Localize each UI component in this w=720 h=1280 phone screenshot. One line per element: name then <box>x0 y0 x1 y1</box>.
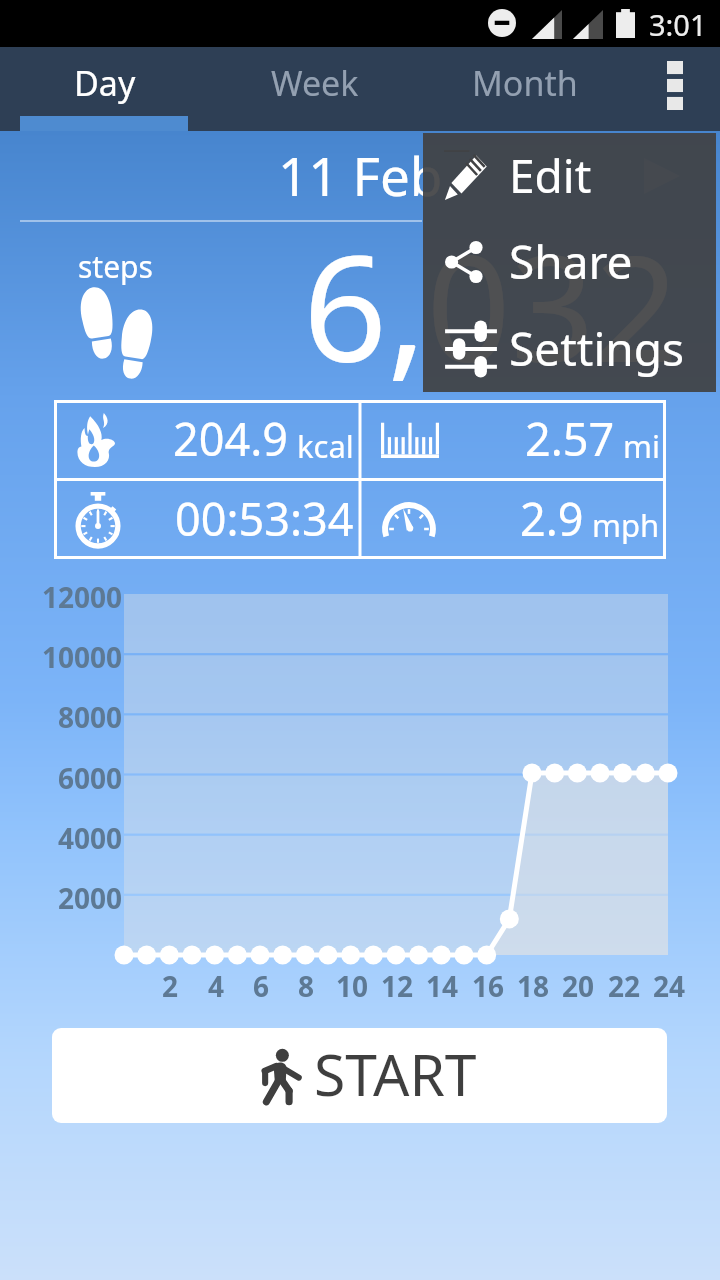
staticText: 8000 <box>2 698 122 736</box>
button[interactable]: Day <box>0 47 210 131</box>
staticText: 6 <box>231 967 291 1005</box>
staticText: Week <box>271 60 359 106</box>
other: Do not disturb <box>488 9 516 37</box>
staticText: 10 <box>322 967 382 1005</box>
button[interactable]: 2.57 <box>360 400 666 479</box>
staticText: 14 <box>412 967 472 1005</box>
button[interactable]: START <box>52 1028 667 1123</box>
staticText: 8 <box>276 967 336 1005</box>
staticText: 2.9 <box>520 488 584 549</box>
staticText: 18 <box>503 967 563 1005</box>
staticText: Edit <box>509 144 592 207</box>
staticText: mi <box>623 425 660 467</box>
staticText: steps <box>78 246 153 287</box>
staticText: 6,032 <box>303 205 679 405</box>
staticText: 4000 <box>2 819 122 857</box>
staticText: 10000 <box>2 638 122 676</box>
button[interactable]: More options <box>630 47 720 131</box>
staticText: 12000 <box>2 578 122 616</box>
staticText: 6000 <box>2 759 122 797</box>
button[interactable]: Month <box>420 47 630 131</box>
button[interactable]: 204.9 <box>54 400 360 479</box>
staticText: 16 <box>458 967 518 1005</box>
staticText: 22 <box>594 967 654 1005</box>
staticText: 2 <box>140 967 200 1005</box>
staticText: 204.9 <box>173 408 289 469</box>
button[interactable]: Edit <box>423 133 716 219</box>
staticText: 4 <box>186 967 246 1005</box>
staticText: Day <box>74 60 136 106</box>
staticText: Share <box>509 230 633 293</box>
staticText: Settings <box>509 317 685 380</box>
staticText: START <box>314 1035 477 1113</box>
staticText: Month <box>472 60 578 106</box>
staticText: 24 <box>639 967 699 1005</box>
staticText: kcal <box>297 425 354 467</box>
button[interactable]: Settings <box>423 306 716 392</box>
staticText: 3:01 <box>649 5 707 44</box>
staticText: 00:53:34 <box>175 488 354 549</box>
staticText: 2000 <box>2 879 122 917</box>
button[interactable]: 11 Feb <box>0 131 720 221</box>
button[interactable]: 2.9 <box>360 479 666 559</box>
button[interactable]: 00:53:34 <box>54 479 360 559</box>
staticText: mph <box>592 504 660 546</box>
staticText: 20 <box>548 967 608 1005</box>
staticText: 12 <box>367 967 427 1005</box>
button[interactable]: Week <box>210 47 420 131</box>
staticText: 2.57 <box>525 408 615 469</box>
button[interactable]: Share <box>423 219 716 305</box>
staticText: 11 Feb <box>278 139 443 211</box>
